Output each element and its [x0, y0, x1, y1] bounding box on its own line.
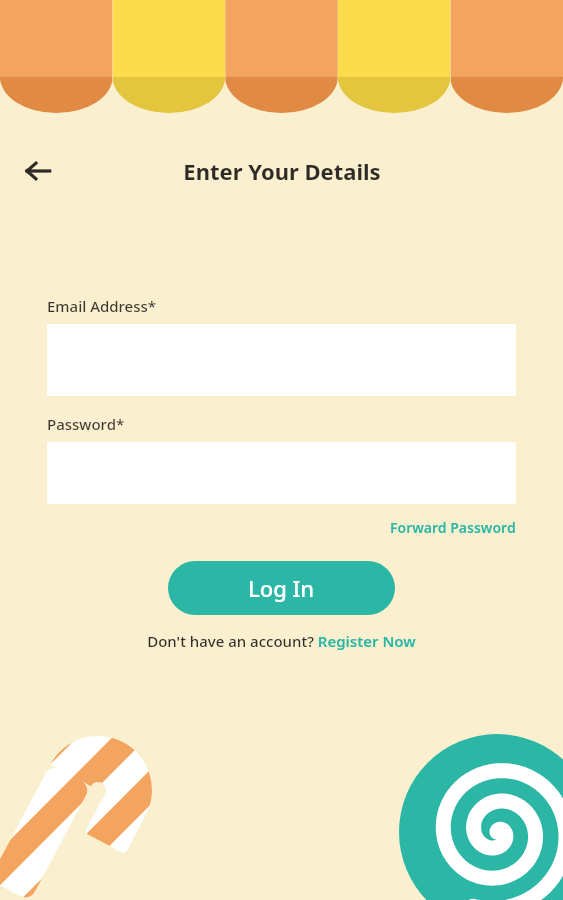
staticText: Enter Your Details: [183, 156, 381, 186]
staticText: Log In: [248, 573, 315, 603]
button[interactable]: Don't have an account? Register Now: [147, 631, 416, 651]
staticText: Password*: [47, 414, 125, 434]
staticText: Email Address*: [47, 296, 157, 316]
staticText: Don't have an account? Register Now: [147, 631, 416, 651]
button[interactable]: Forward Password: [390, 518, 516, 537]
button[interactable]: Log In: [168, 561, 395, 615]
button[interactable]: Back: [14, 147, 62, 195]
staticText: Forward Password: [390, 518, 516, 537]
